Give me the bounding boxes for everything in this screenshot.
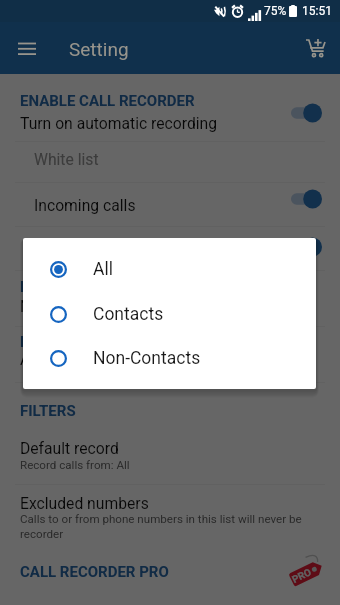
staticText: Default record bbox=[20, 439, 119, 457]
staticText: 75% bbox=[264, 4, 287, 18]
staticText: FILTERS bbox=[20, 402, 76, 420]
button[interactable]: Pro version bbox=[288, 556, 324, 590]
staticText: Outgoing calls bbox=[34, 237, 134, 255]
staticText: Notification sound bbox=[20, 297, 149, 315]
staticText: Record calls from: All bbox=[20, 458, 130, 472]
button[interactable]: Incoming calls bbox=[0, 188, 340, 222]
staticText: PRO bbox=[290, 566, 313, 586]
button[interactable]: Toggle bbox=[287, 233, 325, 261]
button[interactable]: Notification sound bbox=[0, 289, 340, 323]
staticText: Calls to or from phone numbers in this l… bbox=[20, 512, 302, 541]
button[interactable]: Contacts bbox=[23, 302, 316, 327]
staticText: CALL RECORDER PRO bbox=[20, 563, 169, 581]
staticText: All bbox=[93, 259, 113, 280]
button[interactable]: Toggle bbox=[287, 185, 325, 213]
button[interactable]: White list bbox=[0, 142, 340, 176]
button[interactable]: All bbox=[23, 257, 316, 282]
staticText: Incoming calls bbox=[34, 196, 136, 214]
staticText: Non-Contacts bbox=[93, 348, 201, 369]
button[interactable]: Menu bbox=[7, 28, 47, 68]
button[interactable]: CALL RECORDER PRO bbox=[0, 556, 340, 588]
staticText: Turn on automatic recording bbox=[20, 114, 218, 132]
button[interactable]: Outgoing calls bbox=[0, 229, 340, 263]
button[interactable]: Turn on automatic recording bbox=[0, 106, 340, 140]
staticText: 15:51 bbox=[302, 4, 332, 18]
staticText: Setting bbox=[69, 38, 129, 60]
staticText: White list bbox=[34, 150, 99, 168]
button[interactable]: Audio source bbox=[0, 342, 340, 376]
button[interactable]: Non-Contacts bbox=[23, 346, 316, 371]
staticText: ENABLE CALL RECORDER bbox=[20, 92, 195, 110]
staticText: Contacts bbox=[93, 304, 164, 325]
staticText: PLAY bbox=[20, 278, 57, 296]
staticText: Audio source bbox=[20, 350, 112, 368]
staticText: RECORDING bbox=[20, 333, 103, 351]
staticText: Excluded numbers bbox=[20, 494, 149, 512]
button[interactable]: Toggle bbox=[287, 99, 325, 127]
button[interactable]: Default record bbox=[0, 431, 340, 465]
button[interactable]: Excluded numbers bbox=[0, 486, 340, 520]
button[interactable]: Add to cart bbox=[295, 28, 335, 68]
